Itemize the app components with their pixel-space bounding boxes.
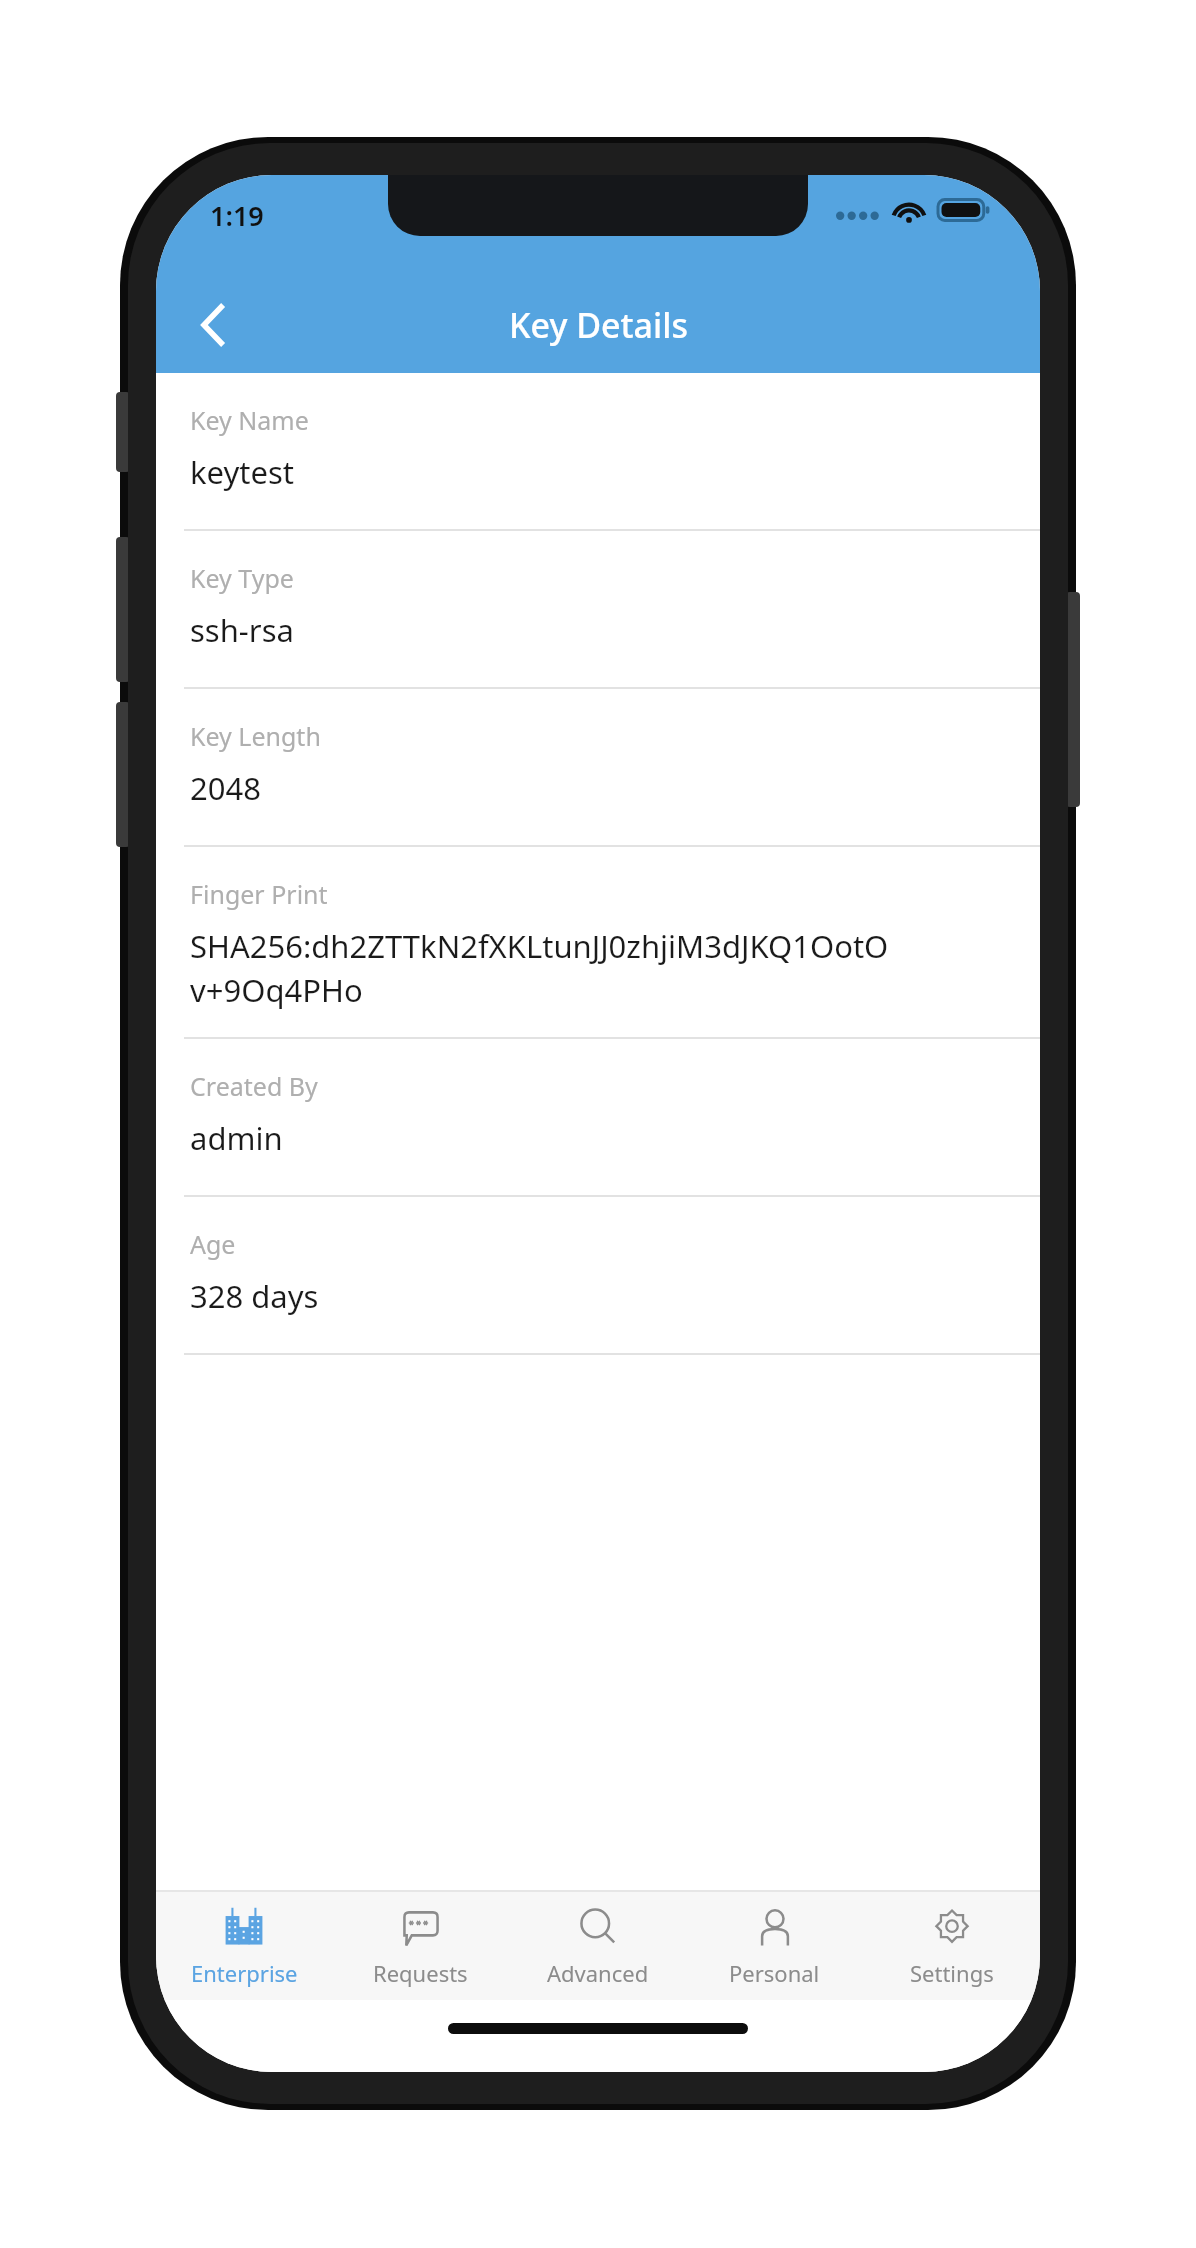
staticText: admin bbox=[190, 1117, 283, 1159]
staticText: ssh-rsa bbox=[190, 609, 294, 651]
staticText: 1:19 bbox=[210, 197, 264, 234]
staticText: keytest bbox=[190, 451, 294, 493]
staticText: Personal bbox=[729, 1958, 820, 1988]
staticText: Key Type bbox=[190, 561, 294, 595]
staticText: 328 days bbox=[190, 1275, 319, 1317]
button[interactable]: Age bbox=[156, 1197, 1040, 1355]
staticText: v+9Oq4PHo bbox=[190, 969, 363, 1011]
staticText: Advanced bbox=[547, 1958, 649, 1988]
staticText: SHA256:dh2ZTTkN2fXKLtunJJ0zhjiM3dJKQ1Oot… bbox=[190, 925, 889, 967]
button[interactable]: Advanced bbox=[509, 1892, 686, 2000]
button[interactable]: Key Type bbox=[156, 531, 1040, 689]
staticText: Created By bbox=[190, 1069, 318, 1103]
button[interactable]: Key Name bbox=[156, 373, 1040, 531]
button[interactable]: Enterprise bbox=[156, 1892, 332, 2000]
staticText: Settings bbox=[910, 1958, 994, 1988]
button[interactable]: Settings bbox=[863, 1892, 1040, 2000]
staticText: Key Name bbox=[190, 403, 309, 437]
button[interactable]: Requests bbox=[332, 1892, 509, 2000]
staticText: Finger Print bbox=[190, 877, 328, 911]
staticText: Requests bbox=[373, 1958, 468, 1988]
staticText: Key Details bbox=[509, 302, 688, 348]
button[interactable]: Finger Print bbox=[156, 847, 1040, 1039]
button[interactable]: Back bbox=[176, 287, 252, 363]
button[interactable]: Created By bbox=[156, 1039, 1040, 1197]
button[interactable]: Key Length bbox=[156, 689, 1040, 847]
button[interactable]: Personal bbox=[686, 1892, 863, 2000]
staticText: 2048 bbox=[190, 767, 261, 809]
staticText: Enterprise bbox=[191, 1958, 298, 1988]
staticText: Key Length bbox=[190, 719, 321, 753]
staticText: Age bbox=[190, 1227, 236, 1261]
